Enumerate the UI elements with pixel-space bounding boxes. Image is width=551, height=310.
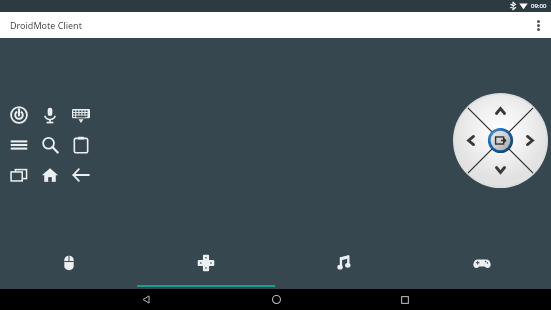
button[interactable]: Home — [262, 289, 290, 310]
button[interactable]: Back — [132, 289, 160, 310]
button[interactable]: Back — [70, 164, 92, 186]
button[interactable]: Music — [275, 247, 413, 289]
button[interactable]: Mouse — [0, 247, 137, 289]
button[interactable]: Gamepad D-pad — [137, 247, 275, 289]
button[interactable]: Clipboard — [70, 134, 92, 156]
button[interactable]: More options — [525, 12, 551, 38]
button[interactable]: Search — [39, 134, 61, 156]
button[interactable]: Microphone — [39, 104, 61, 126]
button[interactable]: Home — [39, 164, 61, 186]
button[interactable]: Keyboard — [70, 104, 92, 126]
button[interactable]: Directional pad — [453, 93, 548, 188]
staticText: DroidMote Client — [10, 19, 82, 31]
button[interactable]: Controller — [413, 247, 551, 289]
staticText: 09:00 — [531, 2, 547, 10]
button[interactable]: Recents — [8, 164, 30, 186]
button[interactable]: Power — [8, 104, 30, 126]
button[interactable]: Menu — [8, 134, 30, 156]
button[interactable]: Recent apps — [391, 289, 419, 310]
